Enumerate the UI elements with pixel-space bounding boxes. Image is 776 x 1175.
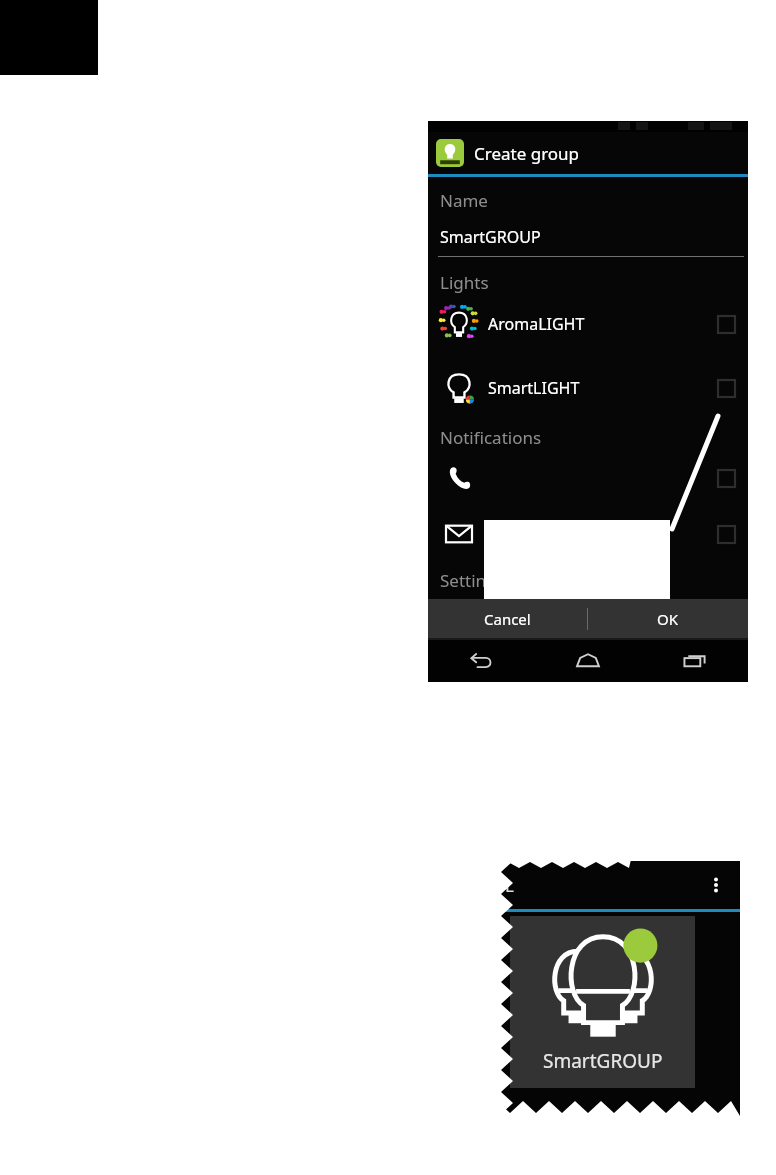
staticText: Create group [474, 142, 580, 165]
button[interactable]: Cancel [428, 599, 587, 638]
button[interactable]: Recents [641, 640, 748, 682]
button[interactable]: SmartLIGHT [428, 368, 748, 408]
button[interactable]: More options [706, 875, 726, 895]
other: Email [446, 521, 472, 547]
button[interactable]: Home [534, 640, 641, 682]
button[interactable]: AromaLIGHT [428, 304, 748, 344]
button[interactable]: Phone [428, 459, 748, 497]
button[interactable]: OK [588, 599, 748, 638]
staticText: Settings [440, 569, 505, 592]
staticText: L [505, 874, 514, 897]
other: Phone [447, 466, 471, 490]
button[interactable]: Toggle [718, 526, 735, 543]
staticText: Notifications [440, 426, 542, 449]
button[interactable]: Create group [428, 132, 748, 174]
staticText: SmartLIGHT [488, 377, 580, 399]
button[interactable]: Toggle [718, 470, 735, 487]
button[interactable]: Toggle [718, 316, 735, 333]
staticText: Lights [440, 271, 489, 294]
staticText: SmartGROUP [543, 1048, 663, 1074]
button[interactable]: SmartGROUP [510, 916, 695, 1088]
button[interactable]: Back [428, 640, 534, 682]
staticText: AromaLIGHT [488, 313, 585, 335]
button[interactable]: Toggle [718, 380, 735, 397]
staticText: OK [657, 609, 679, 629]
staticText: SmartGROUP [440, 226, 541, 248]
button[interactable]: Email [428, 515, 748, 553]
staticText: Cancel [484, 609, 531, 629]
staticText: Name [440, 189, 488, 212]
